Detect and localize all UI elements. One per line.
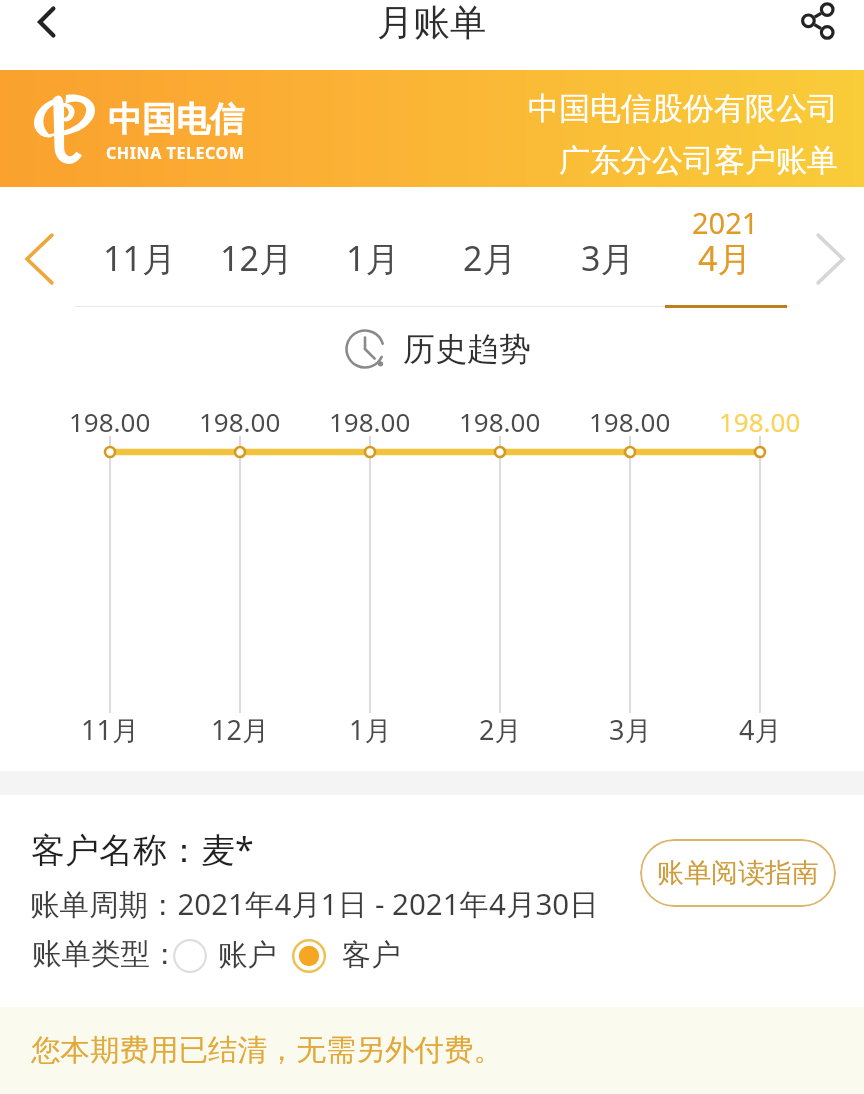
button[interactable]: Previous month [10, 224, 68, 294]
button[interactable]: Account bill type [173, 936, 278, 974]
staticText: 11月 [103, 235, 176, 281]
staticText: 您本期费用已结清，无需另外付费。 [31, 1032, 503, 1069]
staticText: 账单周期：2021年4月1日 - 2021年4月30日 [30, 883, 599, 923]
staticText: 2月 [463, 235, 517, 281]
staticText: 12月 [211, 711, 269, 748]
button[interactable]: 11月 [81, 187, 197, 309]
staticText: 198.00 [329, 404, 411, 439]
button[interactable]: 2月 [432, 187, 548, 309]
staticText: 198.00 [69, 404, 151, 439]
button[interactable]: 2021 [667, 187, 783, 309]
staticText: 4月 [739, 711, 782, 748]
staticText: 账单类型： [32, 936, 180, 973]
staticText: 11月 [81, 711, 139, 748]
staticText: 月账单 [377, 0, 487, 44]
staticText: 3月 [609, 711, 652, 748]
button[interactable]: 3月 [550, 187, 666, 309]
button[interactable]: Next month [802, 224, 860, 294]
staticText: 中国电信 [108, 98, 244, 141]
staticText: 198.00 [199, 404, 281, 439]
staticText: 账单阅读指南 [657, 856, 819, 890]
staticText: 12月 [220, 235, 293, 281]
staticText: 3月 [581, 235, 635, 281]
staticText: 2月 [479, 711, 522, 748]
staticText: 广东分公司客户账单 [559, 141, 838, 180]
staticText: 客户名称：麦* [31, 826, 254, 872]
staticText: CHINA TELECOM [106, 142, 245, 164]
staticText: 账户 [218, 937, 277, 974]
staticText: 2021 [692, 203, 759, 242]
staticText: 中国电信股份有限公司 [528, 89, 838, 128]
button[interactable]: Back [21, 0, 73, 48]
staticText: 198.00 [589, 404, 671, 439]
staticText: 4月 [698, 235, 752, 281]
staticText: 1月 [349, 711, 392, 748]
staticText: 198.00 [459, 404, 541, 439]
button[interactable]: 账单阅读指南 [640, 839, 836, 907]
staticText: 198.00 [719, 404, 801, 439]
button[interactable]: 12月 [198, 187, 314, 309]
staticText: 1月 [346, 235, 400, 281]
button[interactable]: Customer bill type [292, 936, 402, 974]
staticText: 客户 [342, 937, 401, 974]
button[interactable]: 1月 [315, 187, 431, 309]
staticText: 历史趋势 [403, 329, 531, 369]
button[interactable]: Share [792, 0, 844, 48]
